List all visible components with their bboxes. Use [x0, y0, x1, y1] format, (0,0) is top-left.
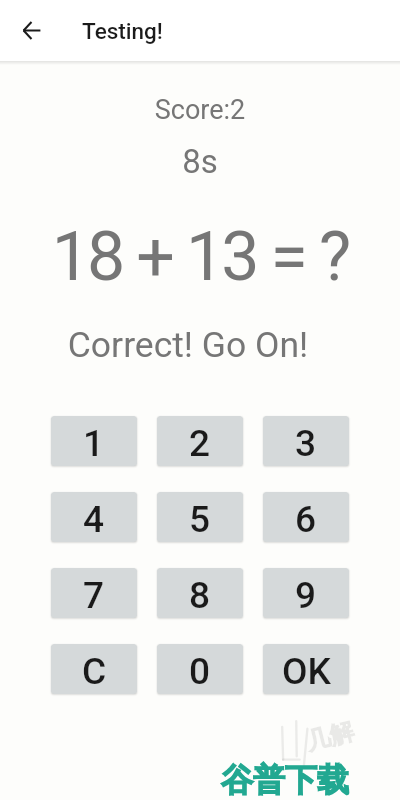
- staticText: 谷普下载: [221, 760, 349, 800]
- staticText: OK: [282, 650, 331, 693]
- staticText: 4: [83, 498, 105, 541]
- staticText: 8: [189, 574, 211, 617]
- button[interactable]: 3: [263, 416, 349, 466]
- staticText: Correct! Go On!: [0, 324, 388, 366]
- staticText: 18 + 13 = ?: [0, 217, 400, 297]
- staticText: 0: [189, 650, 211, 693]
- button[interactable]: OK: [263, 644, 349, 694]
- staticText: 9: [295, 574, 317, 617]
- staticText: 2: [189, 422, 211, 465]
- button[interactable]: 7: [51, 568, 137, 618]
- button[interactable]: Back: [7, 7, 54, 54]
- button[interactable]: 8: [157, 568, 243, 618]
- button[interactable]: 0: [157, 644, 243, 694]
- button[interactable]: C: [51, 644, 137, 694]
- staticText: 8s: [0, 142, 400, 181]
- staticText: 1: [83, 422, 105, 465]
- staticText: Score:2: [0, 94, 400, 126]
- staticText: 6: [295, 498, 317, 541]
- staticText: 7: [83, 574, 105, 617]
- staticText: 几解: [303, 716, 357, 757]
- staticText: 5: [189, 498, 211, 541]
- button[interactable]: 4: [51, 492, 137, 542]
- button[interactable]: 5: [157, 492, 243, 542]
- staticText: Testing!: [82, 18, 163, 44]
- staticText: C: [82, 650, 107, 693]
- staticText: 3: [295, 422, 317, 465]
- button[interactable]: 6: [263, 492, 349, 542]
- button[interactable]: 2: [157, 416, 243, 466]
- button[interactable]: 1: [51, 416, 137, 466]
- button[interactable]: 9: [263, 568, 349, 618]
